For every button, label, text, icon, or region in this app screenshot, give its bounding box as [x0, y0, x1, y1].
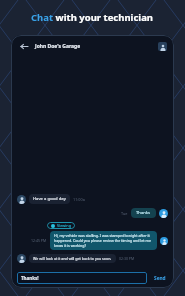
- button[interactable]: Thanks!: [17, 272, 147, 284]
- staticText: Thanks!: [21, 275, 39, 281]
- button[interactable]: Have a good day: [29, 194, 70, 204]
- button[interactable]: Send: [152, 273, 168, 284]
- staticText: 02:30 PM: [119, 256, 135, 261]
- staticText: Tue: [121, 211, 128, 216]
- staticText: John Doe's Garage: [35, 43, 81, 50]
- staticText: We will look at it and will get back to …: [33, 256, 112, 261]
- staticText: Send: [154, 275, 166, 282]
- staticText: Chat with your technician: [31, 11, 154, 24]
- staticText: Have a good day: [33, 196, 66, 202]
- button[interactable]: Thanks: [131, 208, 156, 218]
- button[interactable]: Viewing: [47, 222, 75, 229]
- button[interactable]: We will look at it and will get back to …: [29, 254, 116, 263]
- button[interactable]: Back: [18, 40, 30, 52]
- button[interactable]: Profile: [158, 42, 167, 51]
- staticText: Hi, my vehicle was stalling. I was stamp…: [54, 233, 153, 248]
- staticText: Viewing: [57, 223, 71, 228]
- button[interactable]: Hi, my vehicle was stalling. I was stamp…: [50, 231, 157, 250]
- staticText: 12:45 PM: [31, 238, 47, 243]
- staticText: 11:00a: [73, 197, 85, 202]
- staticText: Thanks: [136, 210, 151, 216]
